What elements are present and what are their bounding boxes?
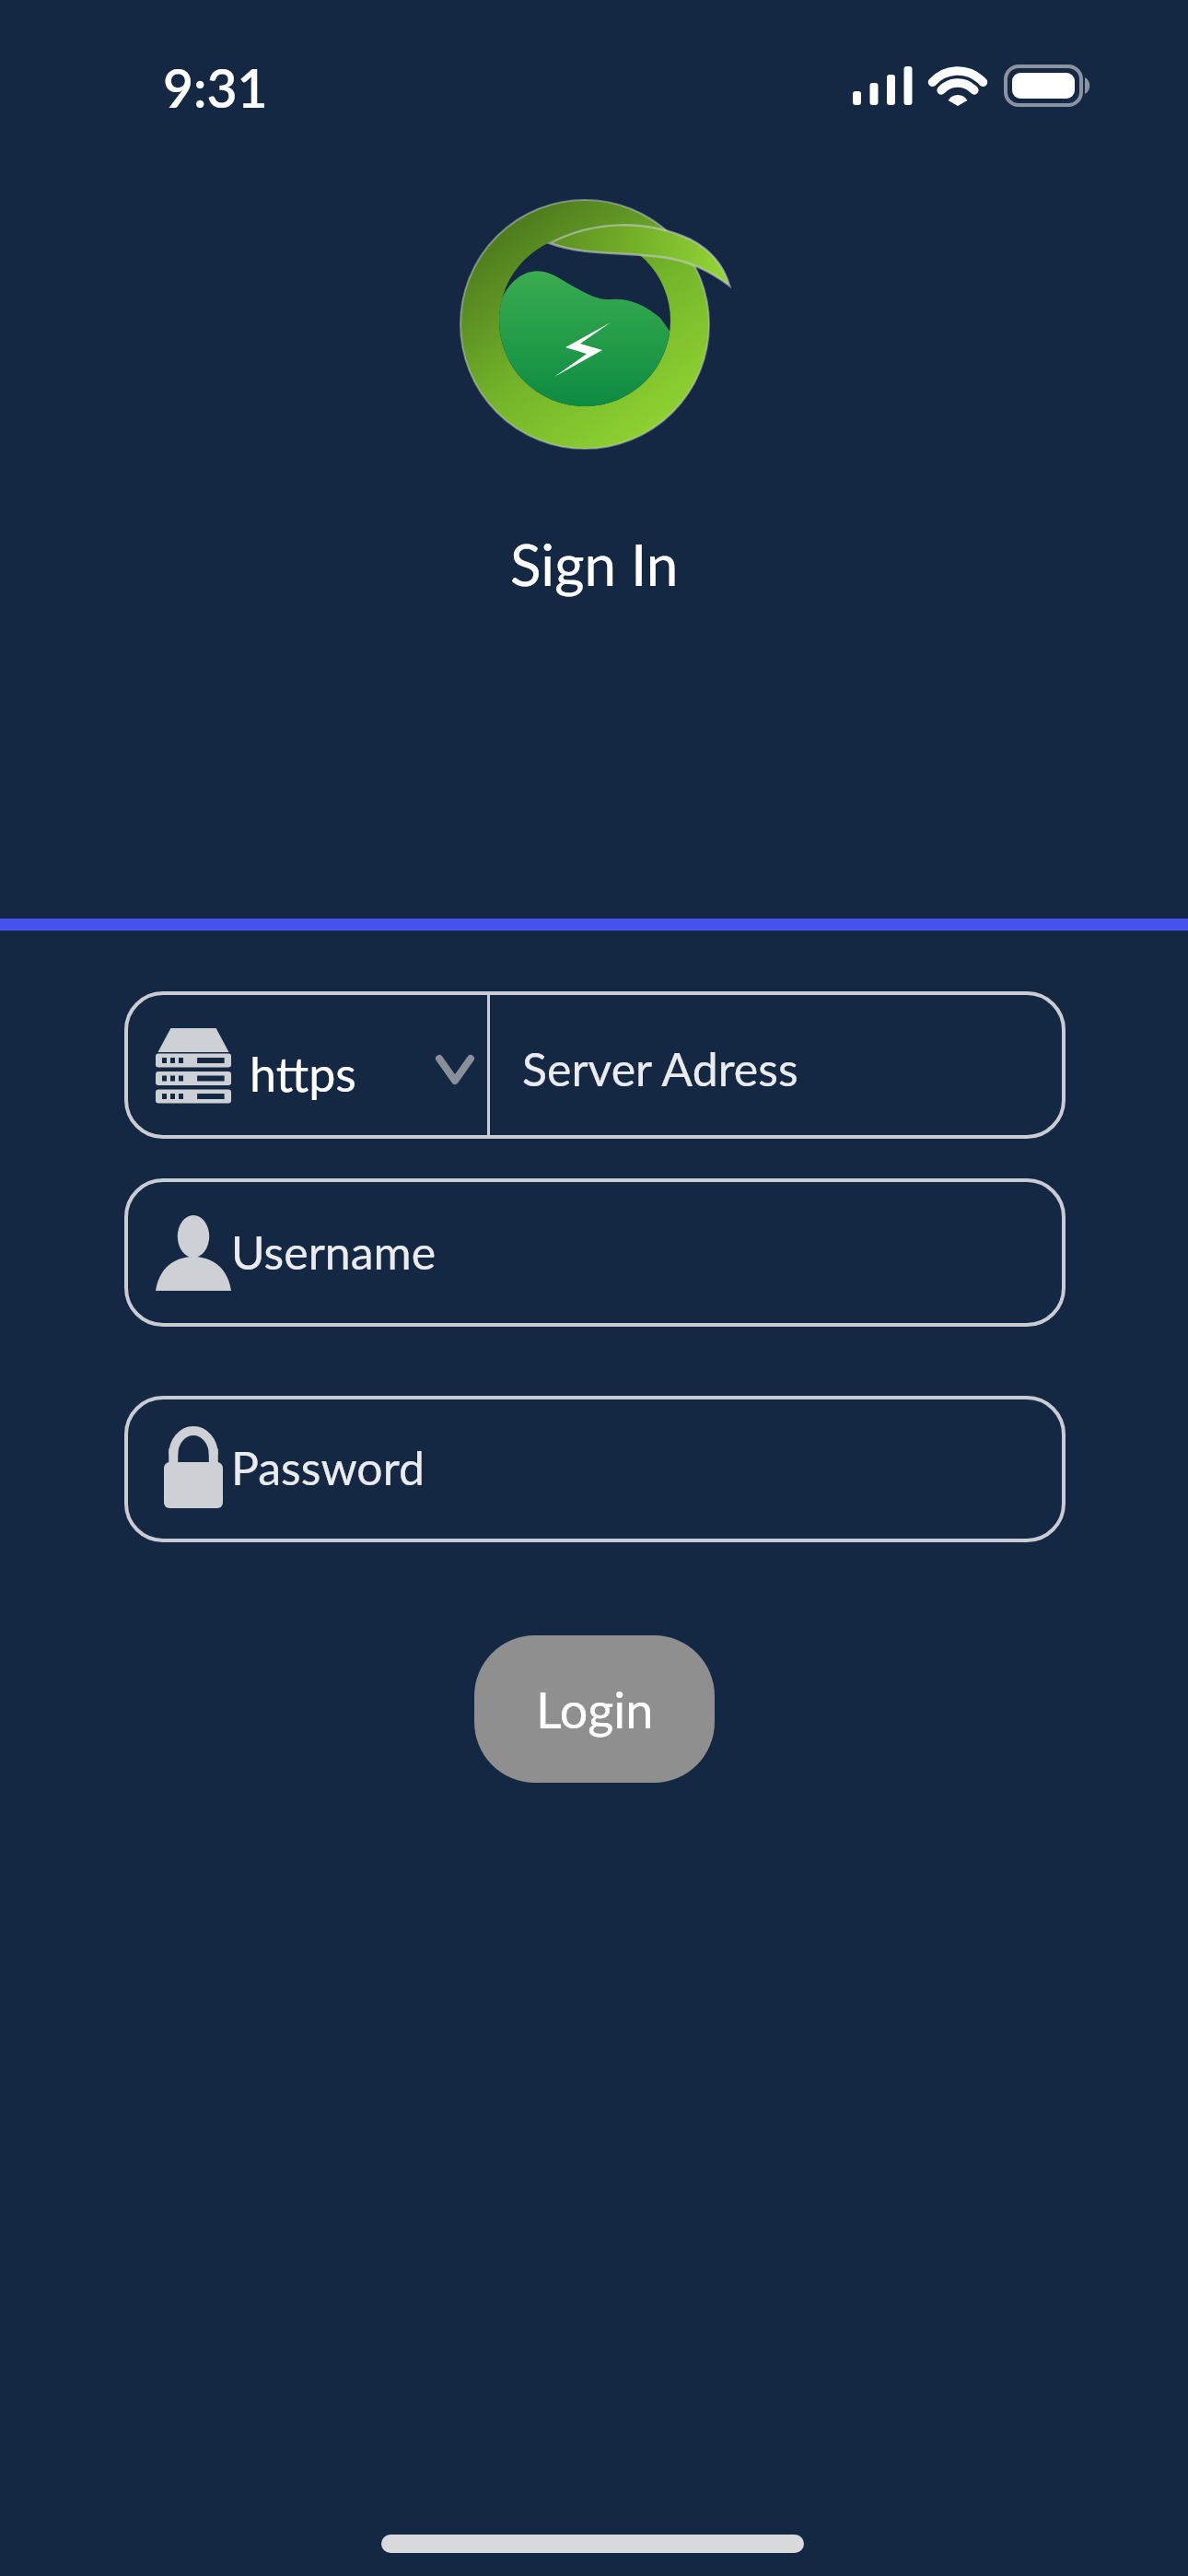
staticText: https xyxy=(250,1045,356,1102)
staticText: Sign In xyxy=(510,530,679,598)
staticText: 9:31 xyxy=(163,56,268,119)
staticText: Server Adress xyxy=(522,1041,798,1096)
button[interactable]: Username xyxy=(124,1178,1066,1327)
staticText: Login xyxy=(536,1680,654,1739)
staticText: Password xyxy=(231,1440,425,1495)
button[interactable]: Password xyxy=(124,1396,1066,1542)
staticText: Username xyxy=(231,1224,437,1280)
button[interactable]: Login xyxy=(474,1635,715,1783)
button[interactable]: https xyxy=(124,991,1066,1139)
